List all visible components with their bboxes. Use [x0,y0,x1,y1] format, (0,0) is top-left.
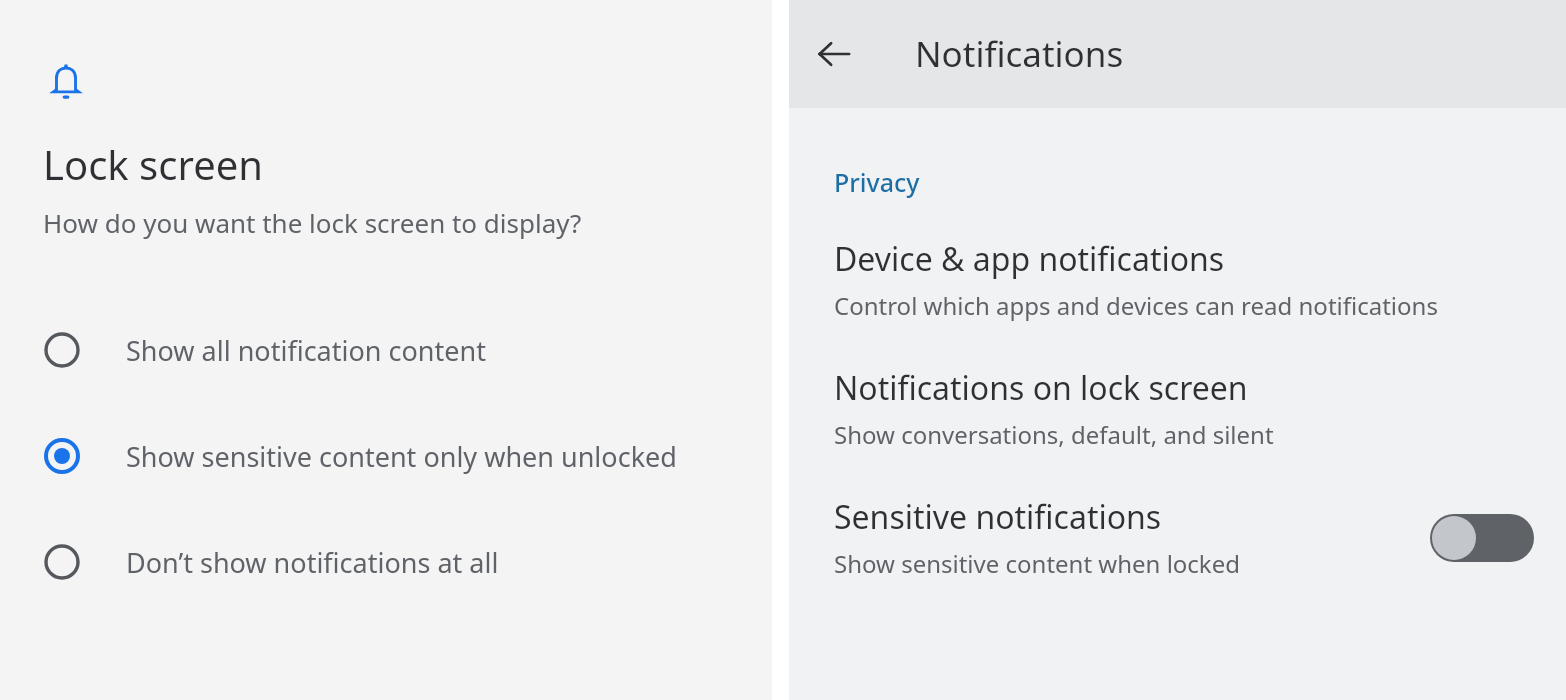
staticText: Don’t show notifications at all [126,544,499,581]
staticText: Device & app notifications [834,237,1225,281]
button[interactable]: Sensitive notifications toggle [1430,510,1534,566]
staticText: Notifications [915,30,1124,78]
staticText: How do you want the lock screen to displ… [43,205,582,240]
staticText: Privacy [834,165,920,199]
button[interactable]: Show all notification content [0,318,772,382]
staticText: Notifications on lock screen [834,366,1248,410]
staticText: Show sensitive content when locked [834,547,1240,580]
staticText: Show all notification content [126,332,486,369]
button[interactable]: Sensitive notifications [789,495,1566,580]
button[interactable]: Don’t show notifications at all [0,530,772,594]
button[interactable]: Back [807,27,861,81]
button[interactable]: Show sensitive content only when unlocke… [0,424,772,488]
staticText: Lock screen [43,137,264,191]
staticText: Show sensitive content only when unlocke… [126,438,677,475]
button[interactable]: Notifications on lock screen [789,366,1566,451]
staticText: Sensitive notifications [834,495,1162,539]
staticText: Control which apps and devices can read … [834,289,1438,322]
staticText: Show conversations, default, and silent [834,418,1274,451]
button[interactable]: Device & app notifications [789,237,1566,322]
